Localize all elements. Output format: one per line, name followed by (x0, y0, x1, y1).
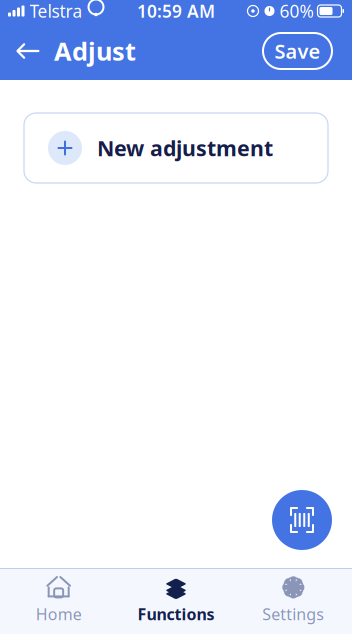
staticText: Settings (262, 603, 324, 625)
staticText: 60% (279, 0, 313, 22)
button[interactable]: Home (0, 572, 117, 628)
staticText: New adjustment (97, 134, 273, 162)
staticText: Save (274, 38, 320, 64)
button[interactable]: Scan barcode (272, 490, 332, 550)
staticText: Telstra (29, 0, 82, 22)
button[interactable]: Back (6, 29, 50, 73)
button[interactable]: New adjustment (24, 113, 328, 183)
button[interactable]: Functions (117, 572, 235, 628)
staticText: 10:59 AM (137, 0, 215, 22)
button[interactable]: Save (263, 33, 332, 69)
staticText: Home (36, 603, 82, 625)
staticText: Functions (137, 603, 214, 625)
staticText: Adjust (54, 34, 136, 68)
button[interactable]: Settings (235, 572, 352, 628)
